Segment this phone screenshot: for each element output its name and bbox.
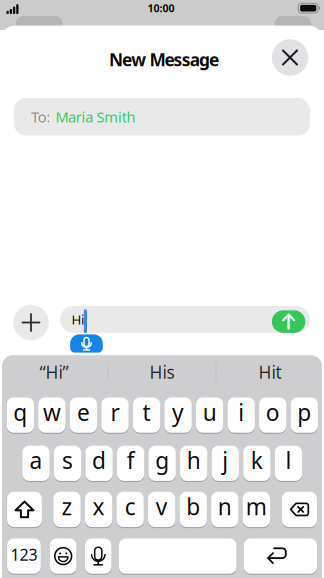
staticText: v [156, 491, 168, 521]
button[interactable]: k [243, 445, 270, 482]
button[interactable]: His [112, 356, 212, 388]
button[interactable]: s [54, 445, 81, 482]
staticText: e [77, 397, 90, 427]
staticText: j [222, 445, 228, 475]
button[interactable]: f [117, 445, 144, 482]
button[interactable] [272, 39, 308, 76]
staticText: u [203, 397, 217, 427]
staticText: x [93, 491, 105, 521]
staticText: k [251, 445, 263, 475]
staticText: n [218, 491, 232, 521]
staticText: a [29, 445, 42, 475]
button[interactable]: u [196, 396, 223, 434]
button[interactable]: a [22, 445, 50, 482]
button[interactable] [7, 491, 42, 528]
staticText: h [187, 445, 201, 475]
button[interactable] [282, 491, 317, 528]
button[interactable]: n [211, 491, 238, 528]
staticText: b [186, 491, 200, 521]
button[interactable]: “Hi” [4, 356, 104, 388]
staticText: m [246, 491, 267, 521]
button[interactable] [85, 537, 111, 575]
button[interactable]: d [85, 445, 113, 482]
staticText: t [143, 397, 151, 427]
button[interactable]: o [259, 396, 286, 434]
button[interactable]: b [180, 491, 207, 528]
staticText: z [61, 491, 72, 521]
staticText: y [172, 397, 184, 427]
staticText: Maria Smith [55, 107, 135, 127]
button[interactable] [119, 537, 236, 575]
staticText: To: [31, 107, 50, 127]
button[interactable]: z [53, 491, 81, 528]
button[interactable]: w [38, 396, 66, 434]
button[interactable]: 123 [7, 537, 41, 575]
staticText: 123 [10, 544, 37, 565]
staticText: l [285, 445, 291, 475]
staticText: “Hi” [39, 360, 68, 383]
button[interactable]: h [180, 445, 207, 482]
staticText: New Message [109, 48, 219, 71]
button[interactable]: q [7, 396, 34, 434]
button[interactable]: x [85, 491, 112, 528]
button[interactable]: v [148, 491, 175, 528]
button[interactable] [50, 537, 76, 575]
button[interactable] [244, 537, 317, 575]
button[interactable]: l [275, 445, 302, 482]
staticText: f [127, 445, 135, 475]
staticText: d [92, 445, 106, 475]
button[interactable]: j [212, 445, 239, 482]
staticText: g [155, 445, 169, 475]
staticText: q [13, 397, 27, 427]
button[interactable]: t [133, 396, 160, 434]
button[interactable]: e [70, 396, 97, 434]
button[interactable]: Hit [220, 356, 320, 388]
staticText: Hi [71, 310, 84, 328]
button[interactable] [13, 305, 49, 340]
button[interactable]: c [116, 491, 144, 528]
button[interactable]: i [227, 396, 255, 434]
staticText: r [110, 397, 119, 427]
staticText: Hit [258, 360, 281, 383]
button[interactable] [272, 310, 305, 333]
staticText: His [149, 360, 174, 383]
staticText: i [238, 397, 244, 427]
button[interactable]: y [164, 396, 192, 434]
button[interactable]: p [291, 396, 318, 434]
staticText: c [125, 491, 136, 521]
staticText: p [297, 397, 311, 427]
button[interactable]: r [101, 396, 129, 434]
button[interactable]: m [243, 491, 270, 528]
staticText: w [43, 397, 61, 427]
button[interactable]: g [148, 445, 176, 482]
staticText: 10:00 [147, 1, 174, 15]
button[interactable]: To: [14, 98, 310, 135]
staticText: s [62, 445, 73, 475]
staticText: o [266, 397, 280, 427]
